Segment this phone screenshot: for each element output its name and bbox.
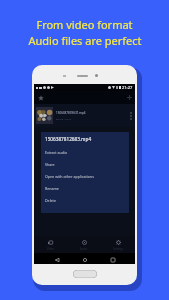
staticText: 21:27 <box>122 85 133 90</box>
staticText: Extract audio <box>45 150 68 155</box>
staticText: Open with other applications <box>45 174 94 179</box>
staticText: From video format <box>36 17 133 32</box>
button[interactable]: Home <box>73 270 97 278</box>
button[interactable]: Recents <box>108 255 117 264</box>
staticText: 1506387812683.mp4 <box>45 136 92 142</box>
staticText: Audio <box>80 247 88 251</box>
staticText: Delete <box>45 198 56 203</box>
button[interactable]: Add <box>124 92 135 103</box>
button[interactable]: Delete <box>41 194 129 206</box>
button[interactable]: Audio <box>67 236 101 253</box>
button[interactable]: Rename <box>41 182 129 194</box>
staticText: Video <box>47 247 54 251</box>
button[interactable]: Open with other applications <box>41 170 129 182</box>
staticText: 602 KB | 00:10 <box>56 118 72 121</box>
button[interactable]: 1506387839637.mp4 <box>34 104 135 127</box>
staticText: Audio files are perfect <box>28 33 142 48</box>
button[interactable]: Back <box>52 255 61 264</box>
staticText: Share <box>45 162 55 167</box>
button[interactable]: Favorites <box>35 92 46 103</box>
button[interactable]: Home <box>80 255 89 264</box>
button[interactable]: More options <box>126 106 135 126</box>
button[interactable]: Extract audio <box>41 146 129 158</box>
button[interactable]: Video <box>34 236 67 253</box>
staticText: Rename <box>45 186 59 191</box>
button[interactable]: Share <box>41 158 129 170</box>
staticText: Settings <box>113 247 123 251</box>
button[interactable]: Settings <box>101 236 135 253</box>
staticText: 1506387839637.mp4 <box>56 111 86 115</box>
